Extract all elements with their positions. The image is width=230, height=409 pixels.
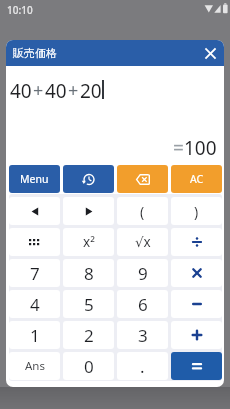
button[interactable]: 3 xyxy=(117,321,168,349)
staticText: 販売価格 xyxy=(13,46,57,60)
staticText: 7 xyxy=(30,262,40,285)
staticText: 3 xyxy=(138,324,148,347)
staticText: 2 xyxy=(84,324,94,347)
button[interactable]: 1 xyxy=(9,321,60,349)
staticText: x² xyxy=(83,233,95,251)
staticText: + xyxy=(33,78,44,100)
staticText: 40 xyxy=(45,78,67,100)
button[interactable] xyxy=(171,259,222,287)
button[interactable] xyxy=(9,197,60,225)
button[interactable]: x² xyxy=(63,228,114,256)
button[interactable]: 5 xyxy=(63,290,114,318)
staticText: 100 xyxy=(184,135,217,158)
button[interactable]: 4 xyxy=(9,290,60,318)
button[interactable]: . xyxy=(117,352,168,380)
button[interactable] xyxy=(63,165,114,193)
button[interactable] xyxy=(171,290,222,318)
staticText: Menu xyxy=(20,172,49,186)
button[interactable] xyxy=(171,228,222,256)
button[interactable]: Menu xyxy=(9,165,60,193)
staticText: ) xyxy=(194,202,199,221)
staticText: Ans xyxy=(25,358,45,374)
button[interactable]: 6 xyxy=(117,290,168,318)
staticText: √x xyxy=(135,233,151,251)
button[interactable]: 7 xyxy=(9,259,60,287)
staticText: 20 xyxy=(80,78,102,100)
button[interactable] xyxy=(9,228,60,256)
button[interactable]: ( xyxy=(117,197,168,225)
staticText: 1 xyxy=(30,324,40,347)
staticText: 9 xyxy=(138,262,148,285)
button[interactable]: Ans xyxy=(9,352,60,380)
button[interactable]: 販売価格 xyxy=(6,40,224,66)
staticText: 40 xyxy=(10,78,32,100)
staticText: ( xyxy=(140,202,145,221)
staticText: 0 xyxy=(84,355,94,378)
staticText: 8 xyxy=(84,262,94,285)
staticText: 4 xyxy=(30,293,40,316)
staticText: + xyxy=(68,78,79,100)
button[interactable] xyxy=(117,165,168,193)
button[interactable] xyxy=(63,197,114,225)
button[interactable] xyxy=(171,352,222,380)
button[interactable]: ) xyxy=(171,197,222,225)
button[interactable] xyxy=(171,321,222,349)
staticText: 5 xyxy=(84,293,94,316)
button[interactable]: 9 xyxy=(117,259,168,287)
staticText: AC xyxy=(190,172,204,186)
button[interactable]: 0 xyxy=(63,352,114,380)
button[interactable]: √x xyxy=(117,228,168,256)
staticText: 10:10 xyxy=(7,3,33,17)
button[interactable]: 2 xyxy=(63,321,114,349)
button[interactable]: AC xyxy=(171,165,222,193)
staticText: . xyxy=(140,355,145,378)
staticText: = xyxy=(173,135,184,158)
button[interactable]: 8 xyxy=(63,259,114,287)
staticText: 6 xyxy=(138,293,148,316)
